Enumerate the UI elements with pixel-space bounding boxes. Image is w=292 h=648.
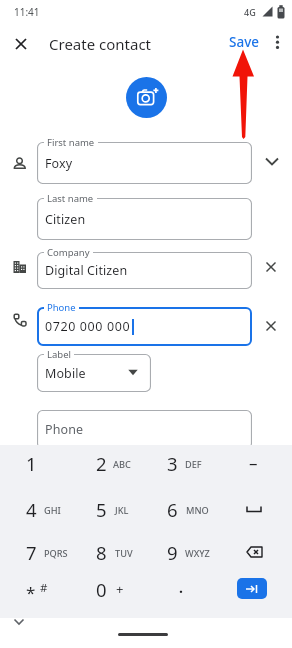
- button[interactable]: Save: [184, 28, 292, 56]
- button[interactable]: [146, 528, 219, 570]
- button[interactable]: [73, 445, 146, 487]
- button[interactable]: [73, 487, 146, 529]
- button[interactable]: [146, 445, 219, 487]
- staticText: 3: [167, 451, 178, 476]
- button[interactable]: [73, 528, 146, 570]
- staticText: 0720 000 000: [45, 318, 131, 335]
- staticText: Save: [229, 33, 260, 51]
- staticText: Create contact: [49, 34, 152, 54]
- staticText: 6: [167, 497, 178, 522]
- button[interactable]: [0, 528, 73, 570]
- button[interactable]: [260, 315, 282, 337]
- staticText: 4: [26, 497, 37, 522]
- staticText: 11:41: [14, 5, 40, 19]
- button[interactable]: Digital Citizen: [37, 252, 252, 289]
- staticText: Mobile: [45, 365, 86, 382]
- staticText: ABC: [113, 458, 131, 471]
- staticText: 4G: [244, 6, 256, 18]
- button[interactable]: [0, 487, 73, 529]
- button[interactable]: [269, 34, 286, 51]
- staticText: Citizen: [45, 211, 86, 228]
- staticText: 0: [96, 577, 107, 602]
- staticText: GHI: [44, 504, 61, 517]
- button[interactable]: Phone: [37, 410, 252, 449]
- button[interactable]: [146, 487, 219, 529]
- staticText: 7: [26, 540, 37, 565]
- staticText: TUV: [115, 547, 133, 560]
- staticText: –: [249, 451, 258, 474]
- button[interactable]: [219, 445, 292, 487]
- button[interactable]: [219, 528, 292, 570]
- staticText: 9: [167, 540, 178, 565]
- staticText: Last name: [47, 192, 94, 204]
- button[interactable]: Foxy: [37, 142, 252, 184]
- staticText: 8: [96, 540, 107, 565]
- staticText: Phone: [45, 421, 84, 438]
- button[interactable]: [0, 570, 73, 612]
- staticText: WXYZ: [185, 547, 210, 560]
- button[interactable]: [73, 570, 146, 612]
- staticText: 5: [96, 497, 107, 522]
- button[interactable]: [260, 256, 282, 278]
- button[interactable]: [9, 32, 33, 56]
- button[interactable]: [146, 570, 219, 612]
- staticText: +: [116, 580, 124, 598]
- staticText: JKL: [115, 504, 129, 517]
- staticText: .: [179, 578, 183, 597]
- staticText: Foxy: [45, 155, 73, 172]
- staticText: Company: [47, 246, 90, 258]
- button[interactable]: [0, 445, 73, 487]
- staticText: 2: [96, 451, 107, 476]
- staticText: *: [26, 581, 36, 604]
- button[interactable]: Citizen: [37, 198, 252, 240]
- staticText: PQRS: [44, 547, 68, 560]
- staticText: Label: [47, 348, 71, 360]
- button[interactable]: [126, 77, 167, 118]
- staticText: #: [40, 580, 48, 596]
- button[interactable]: [237, 578, 267, 599]
- staticText: DEF: [185, 458, 202, 471]
- staticText: Phone: [47, 301, 76, 313]
- button[interactable]: Mobile: [37, 354, 151, 392]
- staticText: 1: [26, 451, 37, 476]
- staticText: MNO: [186, 504, 209, 517]
- button[interactable]: [8, 615, 30, 629]
- button[interactable]: 0720 000 000: [37, 307, 252, 346]
- staticText: Digital Citizen: [45, 262, 128, 279]
- staticText: First name: [47, 136, 95, 148]
- button[interactable]: [219, 487, 292, 529]
